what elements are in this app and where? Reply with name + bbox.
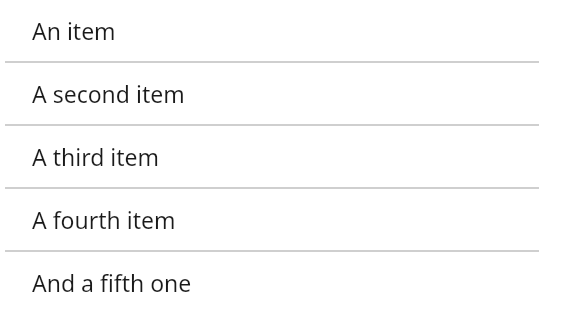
staticText: An item [32, 15, 116, 46]
button[interactable]: A fourth item [0, 189, 564, 250]
staticText: A second item [32, 78, 185, 109]
staticText: A fourth item [32, 204, 176, 235]
staticText: And a fifth one [32, 267, 192, 298]
button[interactable]: A second item [0, 63, 564, 124]
button[interactable]: And a fifth one [0, 252, 564, 313]
staticText: A third item [32, 141, 160, 172]
button[interactable]: An item [0, 0, 564, 61]
button[interactable]: A third item [0, 126, 564, 187]
